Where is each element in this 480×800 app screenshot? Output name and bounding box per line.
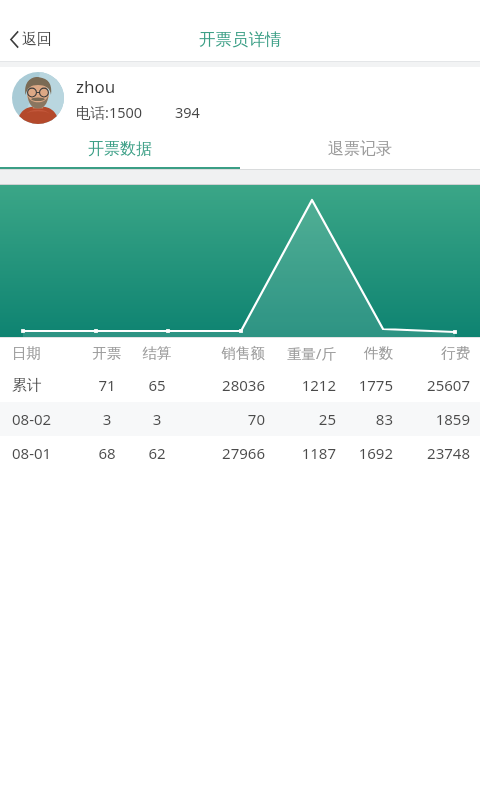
button[interactable]: 返回 <box>0 24 64 55</box>
button[interactable]: 08-01 <box>0 436 480 470</box>
staticText: 71 <box>83 375 131 395</box>
staticText: 70 <box>183 409 265 429</box>
staticText: 返回 <box>22 30 52 49</box>
staticText: 1775 <box>336 375 393 395</box>
staticText: 重量/斤 <box>265 343 336 363</box>
staticText: 开票数据 <box>88 139 152 159</box>
button[interactable]: 开票数据 <box>0 129 240 169</box>
staticText: 394 <box>175 102 200 122</box>
other: Profile avatar <box>12 72 64 124</box>
staticText: 1187 <box>265 443 336 463</box>
staticText: 销售额 <box>183 344 265 362</box>
button[interactable]: 累计 <box>0 368 480 402</box>
staticText: 08-02 <box>12 409 83 429</box>
staticText: 3 <box>131 409 183 429</box>
staticText: 27966 <box>183 443 265 463</box>
staticText: 电话:1500 <box>76 102 143 122</box>
staticText: 28036 <box>183 375 265 395</box>
staticText: 08-01 <box>12 443 83 463</box>
button[interactable]: 08-02 <box>0 402 480 436</box>
staticText: 65 <box>131 375 183 395</box>
staticText: 62 <box>131 443 183 463</box>
staticText: 件数 <box>336 344 393 362</box>
button[interactable]: Profile avatar <box>0 67 480 129</box>
staticText: 开票 <box>83 344 131 362</box>
staticText: 1212 <box>265 375 336 395</box>
staticText: zhou <box>76 75 116 98</box>
staticText: 结算 <box>131 344 183 362</box>
staticText: 1692 <box>336 443 393 463</box>
staticText: 退票记录 <box>328 139 392 159</box>
button[interactable]: 退票记录 <box>240 129 480 169</box>
button[interactable]: 日期 <box>0 338 480 368</box>
staticText: 25607 <box>393 375 470 395</box>
staticText: 行费 <box>393 344 470 362</box>
staticText: 3 <box>83 409 131 429</box>
staticText: 1859 <box>393 409 470 429</box>
staticText: 开票员详情 <box>199 29 282 50</box>
staticText: 68 <box>83 443 131 463</box>
staticText: 83 <box>336 409 393 429</box>
staticText: 累计 <box>12 376 83 395</box>
staticText: 25 <box>265 409 336 429</box>
staticText: 23748 <box>393 443 470 463</box>
staticText: 日期 <box>12 344 83 362</box>
